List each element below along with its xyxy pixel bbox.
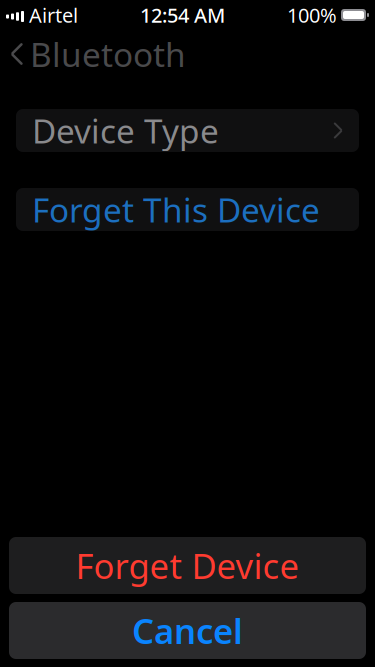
button[interactable]: Forget This Device (16, 188, 359, 231)
staticText: Device Type (32, 108, 219, 153)
staticText: Forget This Device (32, 187, 320, 232)
button[interactable]: Forget Device (9, 537, 366, 594)
button[interactable]: Bluetooth (0, 26, 186, 82)
staticText: Bluetooth (30, 32, 186, 76)
staticText: 100% (287, 2, 337, 28)
button[interactable]: Cancel (9, 602, 366, 659)
staticText: Airtel (29, 2, 78, 28)
staticText: Cancel (132, 607, 243, 653)
staticText: 12:54 AM (140, 2, 225, 28)
button[interactable]: Device Type (16, 109, 359, 152)
staticText: Forget Device (75, 542, 299, 588)
